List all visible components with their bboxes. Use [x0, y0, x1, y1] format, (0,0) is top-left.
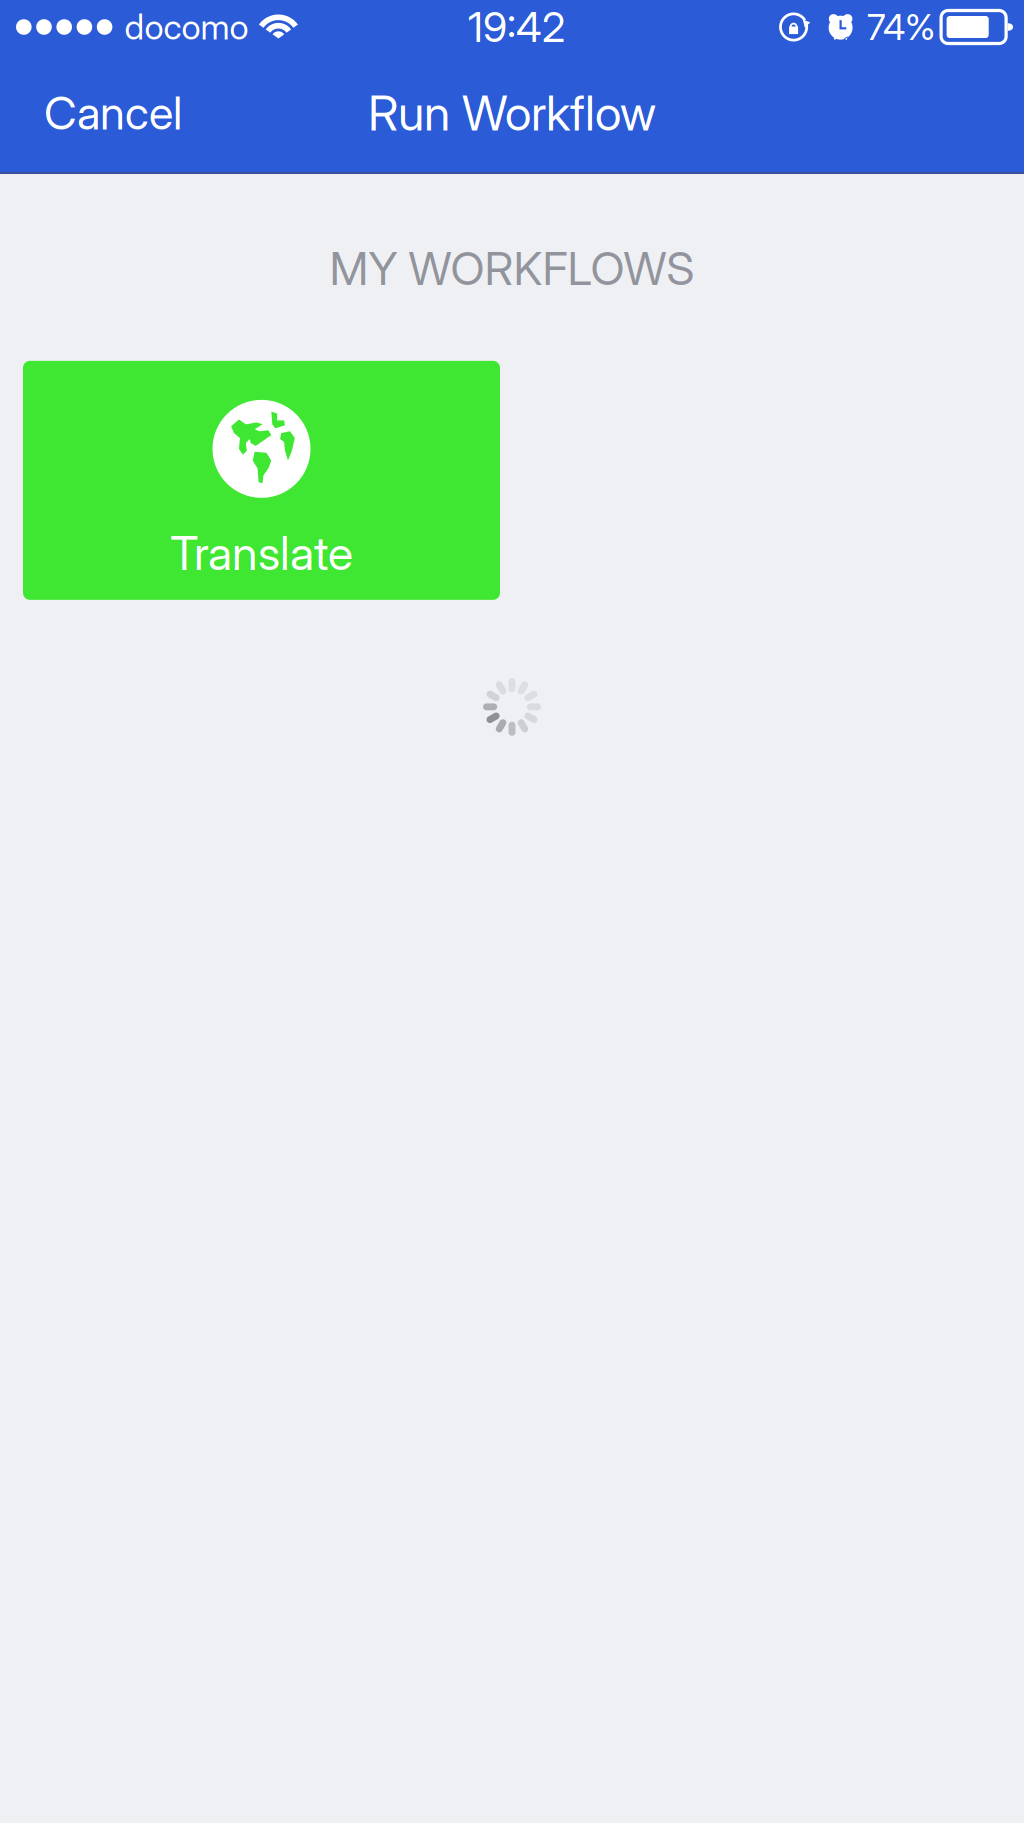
staticText: Run Workflow — [368, 84, 656, 142]
staticText: 19:42 — [468, 2, 565, 52]
staticText: Translate — [170, 525, 353, 581]
staticText: Cancel — [44, 86, 182, 140]
staticText: MY WORKFLOWS — [329, 241, 694, 296]
staticText: docomo — [124, 6, 248, 48]
button[interactable]: Translate — [23, 361, 500, 600]
staticText: 74% — [867, 5, 935, 49]
button[interactable]: Cancel — [30, 62, 196, 164]
